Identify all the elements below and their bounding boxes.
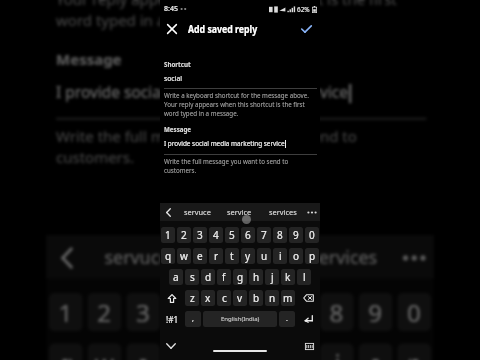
button[interactable]: q — [49, 343, 83, 360]
button[interactable]: t — [225, 248, 239, 264]
button[interactable]: h — [249, 269, 263, 285]
button[interactable]: 5 — [204, 293, 238, 331]
button[interactable]: servuce — [85, 235, 187, 278]
button[interactable]: o — [289, 248, 303, 264]
button[interactable]: r — [165, 343, 199, 360]
staticText: 5 — [229, 228, 235, 242]
staticText: 9 — [293, 228, 299, 242]
staticText: f — [222, 270, 226, 284]
button[interactable]: r — [209, 248, 223, 264]
staticText: 2 — [181, 228, 187, 242]
staticText: services — [269, 207, 297, 217]
button[interactable]: Close — [163, 20, 180, 37]
button[interactable]: w — [177, 248, 191, 264]
staticText: a — [173, 270, 179, 284]
button[interactable]: services — [261, 203, 304, 221]
staticText: servuce — [104, 245, 170, 269]
button[interactable]: c — [217, 290, 231, 306]
staticText: x — [205, 291, 211, 305]
staticText: 7 — [291, 295, 305, 329]
button[interactable]: Save — [298, 20, 315, 37]
button[interactable]: More options — [304, 203, 320, 221]
staticText: p — [309, 249, 316, 263]
button[interactable]: e — [126, 343, 160, 360]
button[interactable]: 4 — [209, 227, 223, 243]
button[interactable]: t — [204, 343, 238, 360]
button[interactable]: y — [242, 343, 276, 360]
button[interactable]: 9 — [289, 227, 303, 243]
button[interactable]: y — [241, 248, 255, 264]
staticText: 0 — [309, 228, 315, 242]
button[interactable]: 8 — [320, 293, 354, 331]
button[interactable]: s — [185, 269, 199, 285]
button[interactable]: p — [305, 248, 319, 264]
button[interactable]: 6 — [241, 227, 255, 243]
button[interactable]: i — [273, 248, 287, 264]
button[interactable]: q — [161, 248, 175, 264]
button[interactable]: Shift — [160, 290, 184, 306]
button[interactable]: i — [320, 343, 354, 360]
button[interactable]: Change keyboard — [301, 338, 317, 354]
button[interactable]: a — [169, 269, 183, 285]
button[interactable]: u — [257, 248, 271, 264]
button[interactable]: u — [281, 343, 315, 360]
button[interactable]: p — [397, 343, 431, 360]
button[interactable]: e — [193, 248, 207, 264]
staticText: Message — [164, 125, 192, 133]
button[interactable]: 3 — [193, 227, 207, 243]
button[interactable]: 7 — [281, 293, 315, 331]
staticText: l — [303, 270, 306, 284]
button[interactable]: w — [87, 343, 121, 360]
button[interactable]: , — [185, 311, 201, 327]
button[interactable]: 9 — [359, 293, 392, 331]
button[interactable]: Symbols — [160, 311, 184, 327]
button[interactable]: 7 — [257, 227, 271, 243]
button[interactable]: g — [233, 269, 247, 285]
button[interactable]: servuce — [176, 203, 218, 221]
button[interactable]: Previous suggestions — [160, 203, 176, 221]
button[interactable]: 0 — [397, 293, 431, 331]
staticText: t — [230, 249, 234, 263]
button[interactable]: service — [218, 203, 261, 221]
staticText: services — [310, 245, 378, 269]
staticText: s — [190, 270, 195, 284]
button[interactable]: x — [201, 290, 215, 306]
button[interactable]: o — [359, 343, 392, 360]
button[interactable]: l — [297, 269, 311, 285]
button[interactable]: 4 — [165, 293, 199, 331]
staticText: d — [205, 270, 212, 284]
button[interactable]: 0 — [305, 227, 319, 243]
button[interactable]: 5 — [225, 227, 239, 243]
button[interactable]: 1 — [49, 293, 83, 331]
button[interactable]: m — [281, 290, 295, 306]
button[interactable]: 2 — [87, 293, 121, 331]
button[interactable]: Hide keyboard — [163, 338, 179, 354]
button[interactable]: 2 — [177, 227, 191, 243]
button[interactable]: Previous suggestions — [46, 235, 85, 278]
staticText: 8:45 — [164, 4, 178, 14]
staticText: 1 — [58, 295, 73, 329]
button[interactable]: . — [279, 311, 295, 327]
staticText: 62% — [297, 5, 310, 14]
staticText: service — [208, 245, 269, 269]
button[interactable]: n — [265, 290, 279, 306]
button[interactable]: English(India) — [203, 311, 277, 327]
button[interactable]: b — [249, 290, 263, 306]
button[interactable]: services — [291, 235, 395, 278]
button[interactable]: d — [201, 269, 215, 285]
button[interactable]: Backspace — [296, 290, 320, 306]
button[interactable]: f — [217, 269, 231, 285]
button[interactable]: v — [233, 290, 247, 306]
button[interactable]: k — [281, 269, 295, 285]
button[interactable]: Enter — [296, 311, 320, 327]
button[interactable]: 1 — [161, 227, 175, 243]
button[interactable]: service — [187, 235, 291, 278]
button[interactable]: 8 — [273, 227, 287, 243]
button[interactable]: More options — [395, 235, 434, 278]
staticText: m — [283, 291, 293, 305]
button[interactable]: 3 — [126, 293, 160, 331]
button[interactable]: 6 — [242, 293, 276, 331]
button[interactable]: j — [265, 269, 279, 285]
button[interactable]: z — [185, 290, 199, 306]
